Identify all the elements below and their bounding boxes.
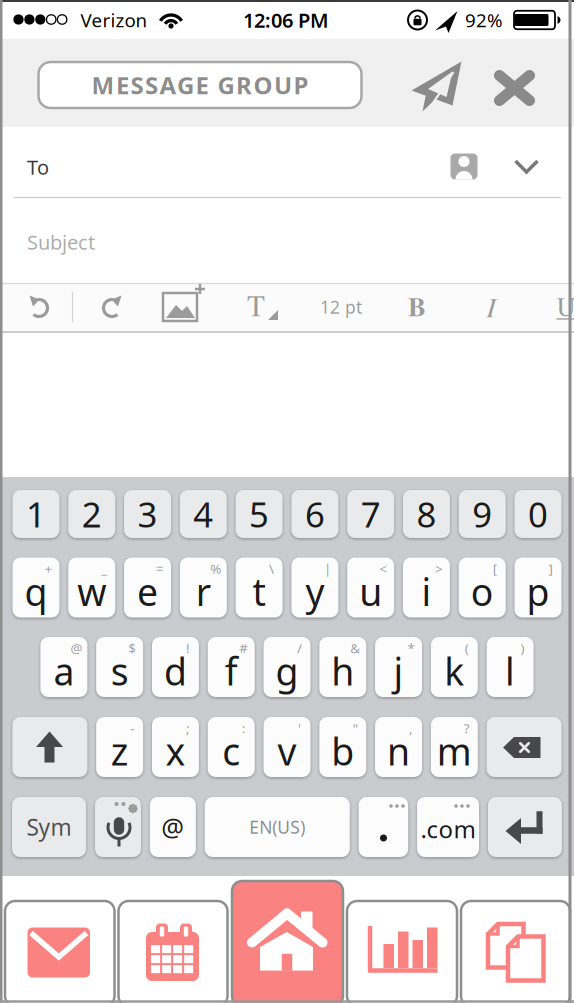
staticText: r (196, 567, 211, 616)
button[interactable]: e (124, 557, 171, 617)
button[interactable] (12, 717, 87, 777)
staticText: + (44, 560, 52, 577)
staticText: MESSAGE GROUP (91, 69, 308, 101)
staticText: o (471, 567, 494, 616)
button[interactable]: 7 (347, 490, 394, 538)
button[interactable]: n (375, 717, 422, 777)
staticText: 92% (465, 8, 503, 32)
staticText: v (277, 726, 296, 776)
button[interactable]: w (68, 557, 115, 617)
staticText: Verizon (80, 8, 147, 32)
button[interactable]: 8 (403, 490, 450, 538)
button[interactable]: T (0, 0, 574, 1003)
button[interactable]: 4 (180, 490, 227, 538)
staticText: : (242, 719, 246, 737)
button[interactable] (359, 797, 408, 857)
button[interactable]: 2 (68, 490, 115, 538)
button[interactable] (232, 881, 343, 1003)
staticText: 6 (305, 491, 325, 537)
button[interactable] (95, 797, 141, 857)
button[interactable] (488, 797, 562, 857)
staticText: ( (465, 639, 469, 657)
staticText: ! (186, 639, 190, 657)
staticText: # (239, 639, 248, 657)
button[interactable]: q (12, 557, 59, 617)
staticText: c (222, 726, 240, 776)
staticText: [ (493, 560, 497, 577)
button[interactable] (0, 0, 574, 1003)
button[interactable] (461, 901, 570, 1003)
button[interactable] (487, 717, 562, 777)
button[interactable]: m (431, 717, 478, 777)
staticText: , (409, 719, 413, 737)
staticText: w (77, 567, 106, 616)
staticText: ] (548, 560, 552, 577)
button[interactable]: j (375, 637, 422, 697)
staticText: @ (70, 639, 82, 657)
button[interactable]: o (459, 557, 506, 617)
button[interactable]: B (0, 0, 574, 1003)
staticText: ; (186, 719, 190, 737)
staticText: 12:06 PM (243, 7, 329, 33)
button[interactable] (0, 0, 574, 1003)
staticText: To (27, 154, 49, 180)
button[interactable]: 3 (124, 490, 171, 538)
button[interactable] (0, 0, 574, 1003)
staticText: z (111, 726, 129, 776)
button[interactable] (0, 0, 574, 1003)
button[interactable]: x (152, 717, 199, 777)
button[interactable]: d (152, 637, 199, 697)
staticText: $ (128, 639, 136, 657)
button[interactable]: 6 (291, 490, 338, 538)
button[interactable]: Sym (12, 797, 86, 857)
staticText: f (225, 646, 238, 696)
staticText: t (253, 567, 266, 616)
button[interactable]: b (319, 717, 366, 777)
staticText: p (526, 567, 549, 616)
button[interactable] (347, 901, 457, 1003)
button[interactable]: r (180, 557, 227, 617)
staticText: 7 (361, 491, 381, 537)
button[interactable]: 0 (514, 490, 561, 538)
button[interactable]: To (0, 0, 574, 1003)
button[interactable]: v (263, 717, 310, 777)
button[interactable]: .com (417, 797, 479, 857)
button[interactable]: y (291, 557, 338, 617)
staticText: \ (269, 560, 274, 577)
button[interactable] (0, 0, 574, 1003)
button[interactable] (5, 901, 114, 1003)
staticText: ' (298, 719, 301, 737)
button[interactable]: k (431, 637, 478, 697)
button[interactable]: 9 (459, 490, 506, 538)
staticText: I (486, 287, 495, 325)
button[interactable]: 5 (236, 490, 283, 538)
staticText: 9 (472, 491, 492, 537)
staticText: k (444, 646, 464, 696)
button[interactable]: MESSAGE GROUP (38, 62, 361, 108)
button[interactable]: z (96, 717, 143, 777)
button[interactable]: @ (150, 797, 196, 857)
button[interactable]: 1 (12, 490, 59, 538)
button[interactable]: f (208, 637, 255, 697)
staticText: x (165, 726, 185, 776)
button[interactable]: h (319, 637, 366, 697)
staticText: B (408, 286, 426, 325)
button[interactable]: u (347, 557, 394, 617)
button[interactable]: 12 pt (0, 0, 574, 1003)
button[interactable]: c (208, 717, 255, 777)
button[interactable]: EN(US) (205, 797, 350, 857)
button[interactable]: i (403, 557, 450, 617)
staticText: d (164, 646, 187, 696)
button[interactable]: g (263, 637, 310, 697)
button[interactable]: t (236, 557, 283, 617)
button[interactable]: I (0, 0, 574, 1003)
button[interactable]: l (487, 637, 534, 697)
staticText: q (24, 567, 47, 616)
staticText: l (505, 646, 515, 696)
button[interactable]: a (40, 637, 87, 697)
button[interactable]: U (0, 0, 574, 1003)
staticText: 5 (249, 491, 269, 537)
button[interactable]: s (96, 637, 143, 697)
button[interactable]: p (514, 557, 561, 617)
button[interactable] (118, 901, 227, 1003)
